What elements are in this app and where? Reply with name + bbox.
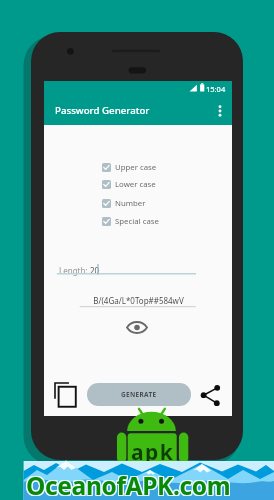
button[interactable]: More options [212, 103, 228, 119]
staticText: Length: [59, 265, 90, 276]
button[interactable]: Copy password [54, 382, 76, 407]
staticText: Upper case [115, 162, 157, 173]
staticText: OceanofAPK.com [27, 469, 232, 500]
staticText: 15:04 [206, 84, 226, 94]
staticText: OceanofAPK.com [26, 468, 231, 500]
staticText: 20 [90, 265, 100, 276]
button[interactable]: GENERATE [87, 383, 191, 406]
staticText: Special case [115, 216, 159, 227]
staticText: OceanofAPK.com [27, 470, 232, 500]
staticText: GENERATE [121, 390, 157, 399]
staticText: OceanofAPK.com [26, 470, 231, 500]
staticText: apk [131, 438, 175, 467]
staticText: Password Generator [55, 104, 150, 117]
button[interactable]: Show password [126, 320, 148, 335]
staticText: OceanofAPK.com [25, 469, 230, 500]
staticText: OceanofAPK.com [25, 470, 230, 500]
button[interactable]: Upper case [102, 162, 164, 173]
staticText: OceanofAPK.com [25, 468, 230, 500]
staticText: OceanofAPK.com [26, 469, 231, 500]
button[interactable]: Lower case [102, 179, 164, 190]
staticText: Number [115, 198, 146, 209]
staticText: OceanofAPK.com [27, 468, 232, 500]
staticText: Lower case [115, 179, 156, 190]
button[interactable]: Special case [102, 216, 164, 227]
staticText: B/(4Ga/L*0Top##584wV [93, 295, 184, 306]
button[interactable]: Number [102, 198, 164, 209]
button[interactable]: Share password [200, 384, 220, 406]
